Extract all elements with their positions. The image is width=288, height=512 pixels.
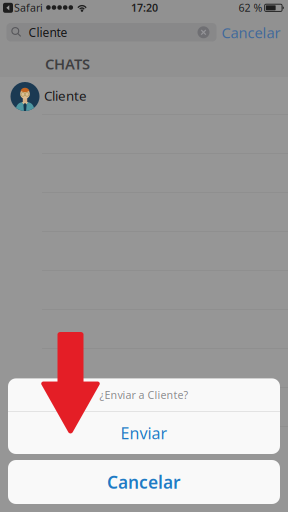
- staticText: Cliente: [44, 87, 87, 104]
- staticText: Safari: [14, 0, 43, 15]
- button[interactable]: Cancelar: [221, 19, 281, 45]
- staticText: CHATS: [45, 54, 90, 74]
- staticText: Cancelar: [221, 23, 280, 42]
- staticText: ¿Enviar a Cliente?: [99, 388, 188, 402]
- staticText: 62 %: [238, 0, 262, 15]
- staticText: Cancelar: [107, 470, 181, 493]
- button[interactable]: Cancelar: [8, 460, 280, 504]
- button[interactable]: Enviar: [8, 412, 280, 454]
- staticText: Enviar: [120, 422, 167, 444]
- staticText: Cliente: [28, 24, 67, 40]
- button[interactable]: Cliente: [0, 77, 288, 115]
- staticText: 17:20: [131, 0, 158, 15]
